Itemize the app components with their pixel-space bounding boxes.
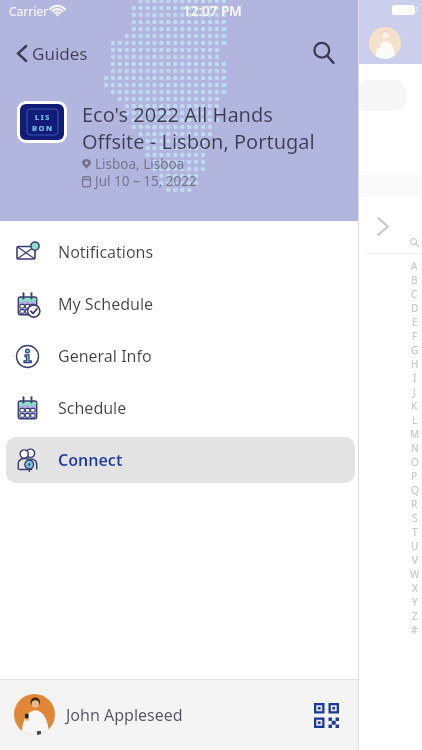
staticText: I (413, 371, 417, 385)
staticText: E (412, 315, 418, 329)
staticText: V (412, 553, 418, 567)
staticText: R (411, 497, 418, 511)
staticText: H (411, 357, 419, 371)
button[interactable]: Show QR code (308, 697, 344, 733)
staticText: M (410, 427, 420, 441)
staticText: Y (412, 595, 418, 609)
staticText: D (411, 301, 419, 315)
staticText: LIS (35, 112, 52, 122)
button[interactable]: General Info (6, 333, 355, 379)
button[interactable]: Connect (6, 437, 355, 483)
staticText: Q (411, 483, 419, 497)
staticText: B (411, 273, 418, 287)
staticText: L (412, 413, 418, 427)
staticText: General Info (58, 345, 152, 367)
staticText: C (411, 287, 418, 301)
staticText: Connect (58, 449, 123, 471)
staticText: W (410, 567, 420, 581)
staticText: P (411, 469, 418, 483)
staticText: Guides (32, 42, 88, 65)
staticText: Carrier (9, 3, 49, 19)
staticText: Jul 10 – 15, 2022 (95, 172, 197, 190)
staticText: O (411, 455, 419, 469)
staticText: J (413, 385, 416, 399)
staticText: 12:07 PM (183, 2, 242, 20)
button[interactable]: Profile (369, 27, 401, 59)
staticText: S (412, 511, 418, 525)
staticText: Schedule (58, 397, 127, 419)
staticText: Lisboa, Lisboa (95, 155, 185, 173)
staticText: K (411, 399, 418, 413)
staticText: # (411, 623, 418, 637)
button[interactable]: Notifications (6, 229, 355, 275)
staticText: F (412, 329, 418, 343)
staticText: G (411, 343, 419, 357)
button[interactable]: Guides (0, 36, 96, 71)
staticText: Eco's 2022 All Hands Offsite - Lisbon, P… (82, 101, 315, 155)
staticText: U (411, 539, 419, 553)
staticText: Notifications (58, 241, 154, 263)
staticText: My Schedule (58, 293, 154, 315)
button[interactable]: Search (306, 35, 342, 71)
staticText: A (411, 259, 418, 273)
staticText: Z (412, 609, 418, 623)
button[interactable]: My Schedule (6, 281, 355, 327)
staticText: John Appleseed (66, 704, 183, 726)
button[interactable]: Schedule (6, 385, 355, 431)
staticText: N (411, 441, 419, 455)
staticText: T (412, 525, 418, 539)
staticText: X (412, 581, 418, 595)
staticText: BON (32, 123, 54, 133)
